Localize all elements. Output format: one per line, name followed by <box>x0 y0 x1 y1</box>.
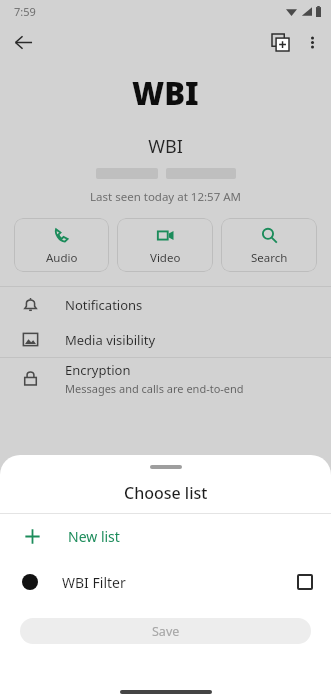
staticText: Encryption <box>65 361 131 379</box>
staticText: WBI <box>132 72 199 114</box>
button[interactable]: More options <box>297 27 327 57</box>
staticText: Video <box>150 250 181 266</box>
button[interactable]: Add to list <box>263 25 297 59</box>
staticText: WBI <box>0 134 331 159</box>
button[interactable]: Back <box>6 25 40 59</box>
button[interactable]: New list <box>0 514 331 559</box>
button[interactable]: Audio <box>14 218 109 272</box>
button[interactable]: Encryption <box>0 358 331 398</box>
staticText: Notifications <box>65 296 143 314</box>
button[interactable]: Media visibility <box>0 322 331 357</box>
button[interactable]: WBI Filter <box>0 559 331 605</box>
staticText: Save <box>152 623 180 640</box>
staticText: Choose list <box>124 482 208 504</box>
staticText: Last seen today at 12:57 AM <box>0 189 331 205</box>
button[interactable]: Video <box>117 218 213 272</box>
button[interactable]: Search <box>221 218 317 272</box>
staticText: New list <box>68 527 120 546</box>
button[interactable]: Save <box>20 618 311 644</box>
staticText: Messages and calls are end-to-end <box>65 381 244 396</box>
button[interactable]: Notifications <box>0 287 331 322</box>
staticText: Search <box>251 250 288 266</box>
staticText: WBI Filter <box>62 573 297 592</box>
staticText: 7:59 <box>14 4 36 19</box>
staticText: Media visibility <box>65 331 156 349</box>
staticText: Audio <box>46 250 78 266</box>
